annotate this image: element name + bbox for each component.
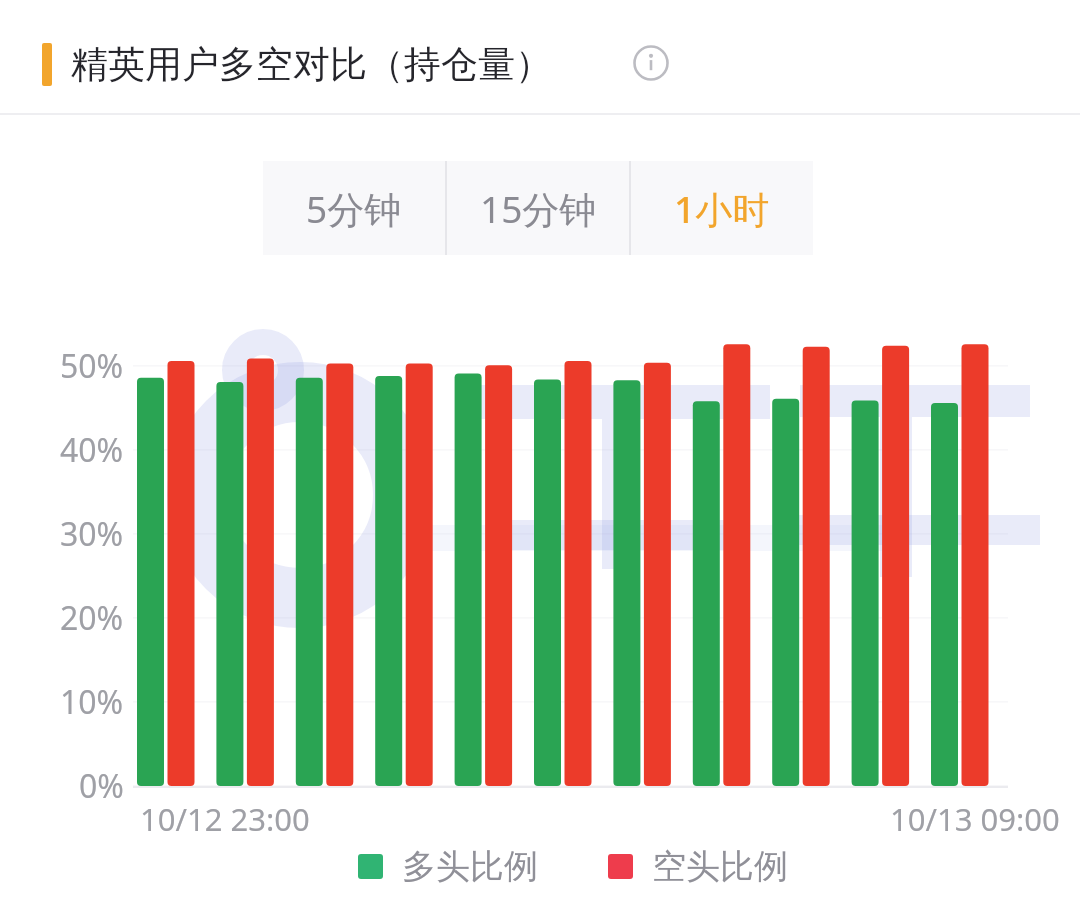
button[interactable]: 多头比例 bbox=[358, 845, 538, 888]
staticText: 精英用户多空对比（持仓量） bbox=[71, 41, 552, 88]
staticText: 20% bbox=[60, 596, 124, 640]
staticText: 10/13 09:00 bbox=[890, 798, 1060, 840]
staticText: 1小时 bbox=[674, 183, 770, 234]
staticText: 空头比例 bbox=[652, 845, 788, 888]
staticText: 10/12 23:00 bbox=[140, 798, 310, 840]
staticText: 15分钟 bbox=[480, 183, 597, 234]
staticText: 30% bbox=[60, 512, 124, 556]
staticText: 0% bbox=[79, 764, 124, 808]
button[interactable]: 空头比例 bbox=[608, 845, 788, 888]
staticText: 40% bbox=[60, 428, 124, 472]
button[interactable]: Info bbox=[630, 42, 671, 83]
staticText: 5分钟 bbox=[306, 183, 402, 234]
button[interactable]: 1小时 bbox=[631, 161, 813, 255]
button[interactable]: 5分钟 bbox=[263, 161, 445, 255]
staticText: 多头比例 bbox=[402, 845, 538, 888]
button[interactable]: 15分钟 bbox=[447, 161, 629, 255]
button[interactable]: 精英用户多空对比（持仓量） bbox=[42, 41, 552, 88]
staticText: 10% bbox=[60, 680, 124, 724]
staticText: 50% bbox=[60, 344, 124, 388]
